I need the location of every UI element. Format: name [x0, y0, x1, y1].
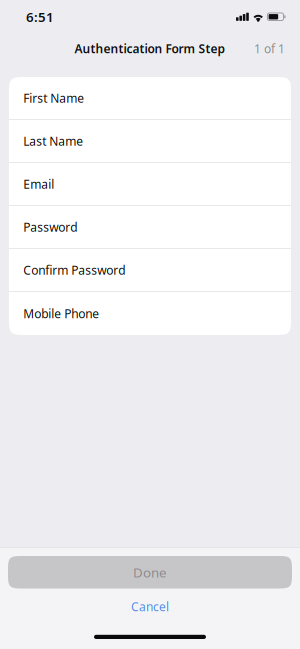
staticText: Last Name — [23, 133, 83, 149]
button[interactable]: Cancel — [115, 594, 185, 618]
button[interactable]: Email — [9, 163, 291, 206]
staticText: Done — [133, 563, 167, 581]
staticText: Mobile Phone — [23, 305, 99, 321]
staticText: Confirm Password — [23, 262, 125, 278]
button[interactable]: Last Name — [9, 120, 291, 163]
button[interactable]: Confirm Password — [9, 249, 291, 292]
staticText: First Name — [23, 90, 84, 106]
staticText: 1 of 1 — [254, 40, 285, 56]
button[interactable]: First Name — [9, 77, 291, 120]
button[interactable]: Done — [8, 556, 292, 588]
staticText: Password — [23, 219, 77, 235]
button[interactable]: Mobile Phone — [9, 292, 291, 335]
staticText: Cancel — [131, 598, 169, 614]
staticText: Authentication Form Step — [74, 40, 225, 56]
staticText: 6:51 — [26, 8, 54, 26]
staticText: Email — [23, 176, 54, 192]
button[interactable]: Password — [9, 206, 291, 249]
